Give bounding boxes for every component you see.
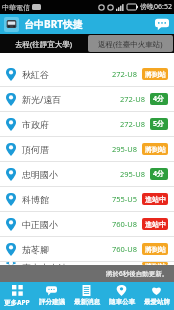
staticText: 272-U8 [112, 69, 138, 79]
staticText: 295-U8 [112, 144, 138, 154]
staticText: 茄苳腳 [22, 244, 49, 255]
button[interactable]: App icon [4, 17, 19, 32]
staticText: 臺中火車站 [22, 262, 67, 265]
staticText: 將到站 [145, 245, 166, 254]
staticText: 將到站 [145, 70, 166, 79]
staticText: 隨車公車 [109, 298, 135, 306]
staticText: 進站中 [145, 195, 166, 204]
button[interactable]: Feedback [155, 17, 169, 31]
staticText: 將到站 [145, 145, 166, 154]
staticText: 最新消息 [74, 298, 100, 306]
button[interactable]: 更多APP [0, 282, 34, 310]
staticText: 台中BRT快捷 [24, 17, 83, 31]
button[interactable]: 忠明國小 [0, 162, 174, 187]
staticText: 將於6秒後自動更新。 [106, 269, 169, 278]
staticText: 中正國小 [22, 219, 58, 230]
button[interactable]: 評分建議 [34, 282, 69, 310]
button[interactable]: 去程(往靜宜大學) [0, 34, 87, 53]
staticText: 更多APP [4, 298, 30, 307]
staticText: 760-U8 [112, 219, 138, 229]
button[interactable]: 科博館 [0, 187, 174, 212]
staticText: 進站中 [145, 220, 166, 229]
staticText: 評分建議 [39, 298, 65, 306]
staticText: 755-U5 [112, 194, 138, 204]
button[interactable]: 最新消息 [69, 282, 104, 310]
button[interactable]: 隨車公車 [104, 282, 139, 310]
staticText: 295-U8 [120, 169, 146, 179]
button[interactable]: 最愛站牌 [139, 282, 174, 310]
staticText: 秋紅谷 [22, 69, 49, 80]
button[interactable]: 秋紅谷 [0, 62, 174, 87]
button[interactable]: 茄苳腳 [0, 237, 174, 262]
staticText: 去程(往靜宜大學) [15, 39, 72, 49]
staticText: 科博館 [22, 194, 49, 205]
staticText: 返程(往臺中火車站) [98, 39, 163, 49]
staticText: 新光/遠百 [22, 93, 62, 105]
staticText: 市政府 [22, 119, 49, 130]
staticText: 5分 [153, 119, 165, 129]
staticText: 760-U8 [112, 244, 138, 254]
staticText: 4分 [153, 94, 165, 104]
staticText: 最愛站牌 [144, 298, 170, 306]
button[interactable]: 返程(往臺中火車站) [88, 35, 173, 52]
button[interactable]: 頂何厝 [0, 137, 174, 162]
button[interactable]: 市政府 [0, 112, 174, 137]
button[interactable]: 中正國小 [0, 212, 174, 237]
staticText: 傍晚06:52 [140, 2, 172, 12]
staticText: 272-U8 [120, 119, 146, 129]
staticText: 忠明國小 [22, 169, 58, 180]
button[interactable]: 臺中火車站 [0, 262, 174, 265]
staticText: 4分 [153, 169, 165, 179]
button[interactable]: 新光/遠百 [0, 87, 174, 112]
staticText: 272-U8 [120, 94, 146, 104]
staticText: 將到站 [145, 262, 166, 265]
staticText: 中華電信 [2, 3, 30, 12]
staticText: 頂何厝 [22, 144, 49, 155]
